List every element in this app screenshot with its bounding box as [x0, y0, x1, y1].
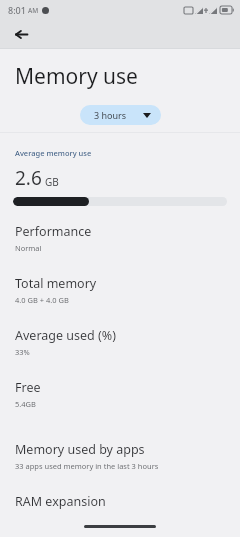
button[interactable]: Average used (%) — [0, 327, 240, 357]
staticText: Average used (%) — [15, 327, 116, 344]
staticText: AM — [28, 6, 39, 15]
staticText: 5.4GB — [15, 399, 36, 409]
staticText: Free — [15, 379, 41, 396]
button[interactable]: Back — [8, 21, 34, 47]
button[interactable]: Total memory — [0, 275, 240, 305]
staticText: GB — [45, 175, 59, 189]
staticText: Average memory use — [15, 148, 92, 158]
button[interactable]: RAM expansion — [0, 493, 240, 510]
staticText: Memory use — [15, 62, 138, 91]
staticText: 33 apps used memory in the last 3 hours — [15, 461, 159, 471]
staticText: Total memory — [15, 275, 97, 292]
staticText: RAM expansion — [15, 493, 106, 510]
staticText: 33% — [15, 347, 30, 357]
staticText: 8:01 — [8, 4, 26, 16]
staticText: 4.0 GB + 4.0 GB — [15, 295, 69, 305]
button[interactable]: 3 hours — [80, 105, 161, 125]
button[interactable]: Free — [0, 379, 240, 409]
staticText: Memory used by apps — [15, 441, 145, 458]
staticText: 3 hours — [94, 109, 127, 121]
staticText: Normal — [15, 243, 42, 253]
button[interactable]: Memory used by apps — [0, 441, 240, 471]
button[interactable]: Performance — [0, 223, 240, 253]
staticText: Performance — [15, 223, 92, 240]
staticText: 2.6 — [15, 165, 42, 191]
